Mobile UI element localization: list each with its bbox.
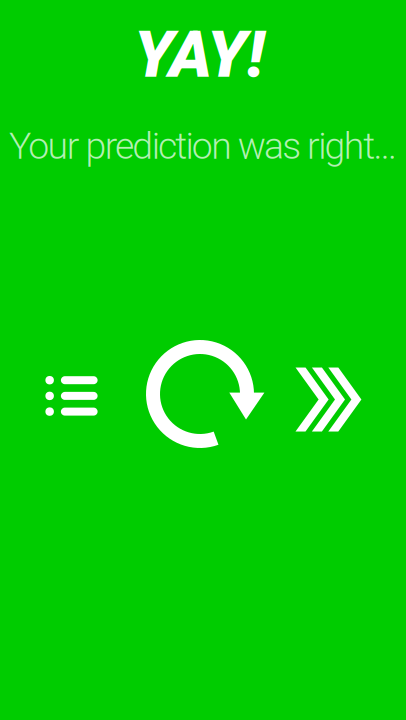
- button[interactable]: Next: [295, 367, 362, 433]
- staticText: Your prediction was right...: [9, 124, 397, 168]
- button[interactable]: Play again: [146, 340, 266, 448]
- button[interactable]: History: [45, 376, 98, 416]
- staticText: YAY!: [134, 16, 265, 93]
